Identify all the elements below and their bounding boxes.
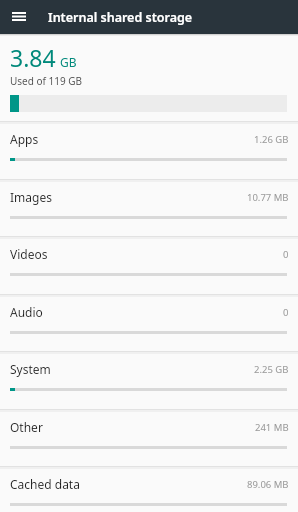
button[interactable]: Cached data — [0, 469, 298, 512]
button[interactable]: Images — [0, 182, 298, 237]
staticText: Other — [10, 419, 43, 435]
staticText: Internal shared storage — [48, 9, 193, 26]
staticText: GB — [60, 54, 77, 70]
button[interactable]: Apps — [0, 124, 298, 179]
button[interactable]: System — [0, 354, 298, 409]
button[interactable]: Videos — [0, 239, 298, 294]
staticText: 0 — [283, 248, 289, 261]
staticText: Videos — [10, 246, 48, 262]
staticText: Images — [10, 189, 52, 205]
staticText: Audio — [10, 304, 43, 320]
staticText: 10.77 MB — [247, 191, 289, 204]
staticText: Used of 119 GB — [10, 74, 83, 88]
staticText: Cached data — [10, 476, 80, 492]
staticText: Apps — [10, 131, 39, 147]
staticText: 89.06 MB — [247, 478, 289, 491]
staticText: 2.25 GB — [254, 363, 289, 376]
staticText: System — [10, 361, 51, 377]
staticText: 0 — [283, 306, 289, 319]
button[interactable]: Audio — [0, 297, 298, 352]
staticText: 241 MB — [255, 421, 289, 434]
staticText: 1.26 GB — [254, 133, 289, 146]
staticText: 3.84 — [10, 42, 56, 73]
button[interactable]: Other — [0, 412, 298, 467]
button[interactable] — [12, 12, 26, 21]
